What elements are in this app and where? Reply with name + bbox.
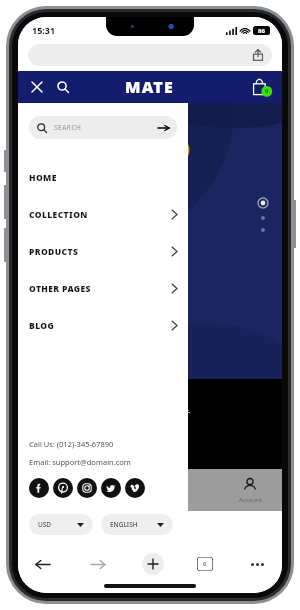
button[interactable]: Share: [28, 44, 272, 66]
button[interactable]: Cart: [252, 77, 272, 97]
staticText: 0: [265, 87, 269, 95]
staticText: 15:31: [32, 24, 56, 36]
staticText: 6: [203, 560, 207, 568]
button[interactable]: Account: [218, 469, 282, 511]
staticText: BLOG: [29, 320, 55, 332]
button[interactable]: Search: [52, 76, 74, 98]
button[interactable]: Vimeo: [125, 478, 145, 498]
button[interactable]: New tab: [142, 553, 164, 575]
button[interactable]: HOME: [18, 159, 188, 196]
button[interactable]: Email: support@domain.com: [29, 457, 131, 467]
button[interactable]: Twitter: [101, 478, 121, 498]
button[interactable]: USD: [29, 514, 93, 535]
staticText: ENGLISH: [110, 520, 138, 529]
staticText: PRODUCTS: [29, 246, 79, 258]
button[interactable]: Back: [32, 553, 54, 575]
button[interactable]: Close: [26, 76, 48, 98]
button[interactable]: ENGLISH: [101, 514, 173, 535]
button[interactable]: Pinterest: [53, 478, 73, 498]
button[interactable]: Forward: [87, 553, 109, 575]
button[interactable]: More: [246, 553, 268, 575]
staticText: 86: [258, 27, 265, 35]
button[interactable]: Call Us: (012)-345-67890: [29, 439, 114, 449]
button[interactable]: Share: [251, 48, 265, 62]
staticText: MATE: [125, 76, 175, 98]
staticText: Account: [239, 496, 262, 504]
button[interactable]: SEARCH: [29, 116, 177, 139]
staticText: OTHER PAGES: [29, 283, 91, 295]
button[interactable]: Tabs: [197, 557, 213, 571]
button[interactable]: BLOG: [18, 307, 188, 344]
staticText: HOME: [29, 172, 57, 184]
staticText: USD: [38, 520, 52, 529]
button[interactable]: Instagram: [77, 478, 97, 498]
button[interactable]: PRODUCTS: [18, 233, 188, 270]
button[interactable]: Facebook: [29, 478, 49, 498]
button[interactable]: OTHER PAGES: [18, 270, 188, 307]
staticText: Subscribe to our newsletter — you won't …: [32, 407, 191, 415]
button[interactable]: COLLECTION: [18, 196, 188, 233]
staticText: SEARCH: [54, 123, 82, 132]
staticText: COLLECTION: [29, 209, 88, 221]
